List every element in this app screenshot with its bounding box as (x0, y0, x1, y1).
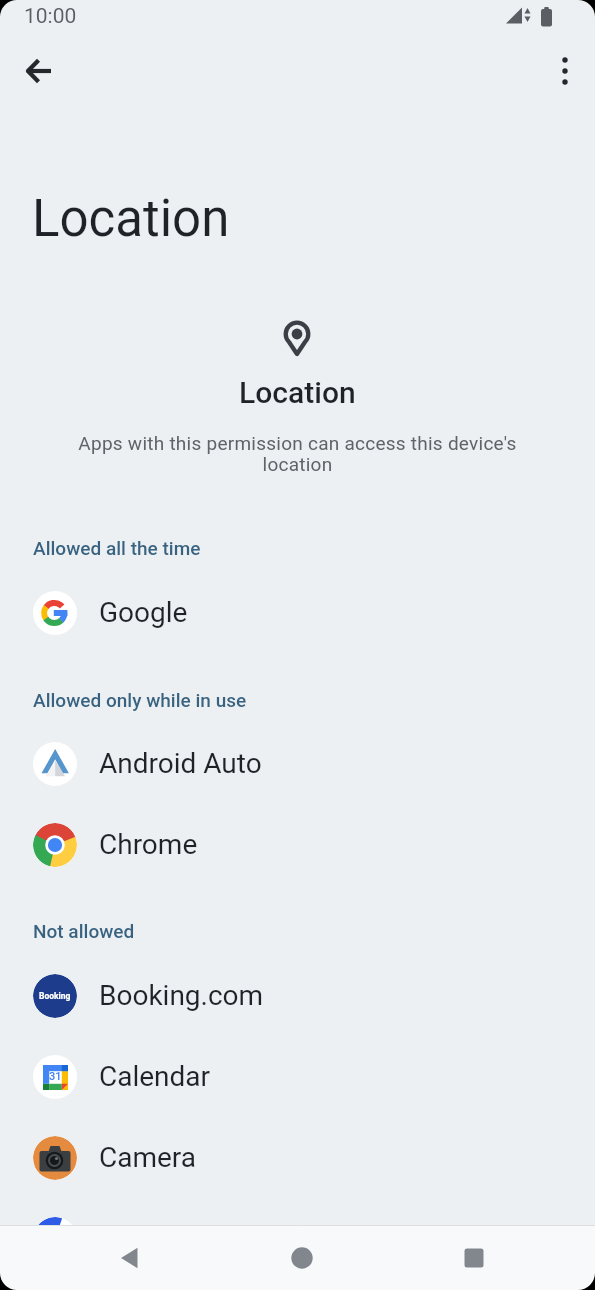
staticText: Calendar (99, 1060, 211, 1093)
button[interactable] (15, 47, 63, 95)
button[interactable]: 31 (0, 1036, 595, 1117)
button[interactable]: Google (0, 572, 595, 653)
button[interactable] (107, 1234, 155, 1282)
button[interactable]: Chrome (0, 804, 595, 885)
staticText: Apps with this permission can access thi… (0, 432, 595, 475)
button[interactable] (278, 1234, 326, 1282)
button[interactable]: Camera (0, 1117, 595, 1198)
button[interactable]: Booking (0, 955, 595, 1036)
staticText: Camera (99, 1141, 197, 1174)
staticText: Google (99, 596, 188, 629)
staticText: Not allowed (33, 920, 135, 942)
staticText: Location (239, 375, 356, 410)
staticText: Location (32, 189, 230, 249)
staticText: 10:00 (24, 4, 77, 29)
staticText: Booking (39, 991, 71, 1001)
button[interactable]: Android Auto (0, 723, 595, 804)
staticText: Allowed only while in use (33, 689, 247, 711)
staticText: Booking.com (99, 979, 264, 1012)
button[interactable] (0, 1198, 595, 1279)
staticText: 31 (49, 1070, 62, 1083)
staticText: Allowed all the time (33, 537, 201, 559)
button[interactable] (541, 47, 589, 95)
button[interactable] (450, 1234, 498, 1282)
staticText: Android Auto (99, 747, 262, 780)
staticText: Chrome (99, 828, 198, 861)
